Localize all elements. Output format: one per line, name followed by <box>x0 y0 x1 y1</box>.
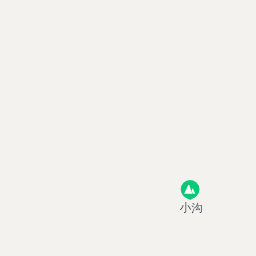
button[interactable]: 小沟 park place marker <box>178 178 204 215</box>
staticText: 小沟 <box>179 201 203 215</box>
